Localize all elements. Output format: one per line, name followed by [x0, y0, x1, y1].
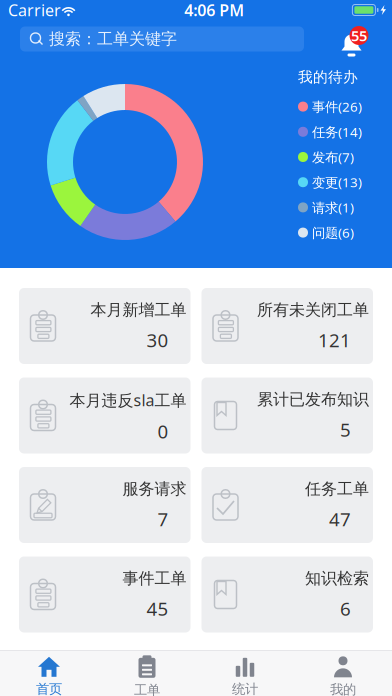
staticText: 累计已发布知识 [257, 389, 369, 409]
button[interactable]: 累计已发布知识 [201, 377, 373, 453]
staticText: 7 [157, 507, 168, 531]
staticText: 首页 [36, 681, 62, 696]
staticText: 本月新增工单 [90, 300, 186, 320]
staticText: 请求(1) [312, 198, 354, 216]
staticText: 5 [340, 417, 351, 442]
staticText: 0 [157, 419, 168, 443]
staticText: 30 [146, 328, 168, 352]
button[interactable]: 工单 [98, 650, 196, 696]
button[interactable]: 搜索：工单关键字 [20, 26, 304, 51]
button[interactable]: 服务请求 [19, 467, 190, 543]
staticText: 事件(26) [312, 98, 362, 115]
button[interactable]: 事件工单 [19, 556, 190, 632]
staticText: 45 [146, 596, 168, 621]
button[interactable]: 本月违反sla工单 [19, 377, 190, 453]
staticText: 55 [351, 26, 367, 45]
staticText: Carrier [8, 0, 61, 21]
staticText: 4:06 PM [184, 0, 244, 21]
staticText: 任务工单 [305, 479, 369, 499]
staticText: 121 [318, 328, 351, 352]
button[interactable]: 所有未关闭工单 [201, 288, 373, 364]
button[interactable]: 知识检索 [201, 556, 373, 632]
staticText: 变更(13) [312, 173, 362, 191]
button[interactable]: 我的 [294, 650, 392, 696]
staticText: 统计 [232, 681, 258, 696]
staticText: 本月违反sla工单 [69, 389, 186, 411]
button[interactable]: Notifications [340, 22, 373, 56]
staticText: 问题(6) [312, 224, 354, 241]
staticText: 事件工单 [122, 568, 186, 588]
button[interactable]: 统计 [196, 650, 294, 696]
staticText: 搜索：工单关键字 [49, 29, 177, 49]
staticText: 任务(14) [312, 123, 362, 141]
button[interactable]: 任务工单 [201, 467, 373, 543]
staticText: 发布(7) [312, 148, 354, 166]
staticText: 服务请求 [122, 479, 186, 499]
staticText: 我的 [330, 681, 356, 696]
button[interactable]: 本月新增工单 [19, 288, 190, 364]
staticText: 47 [329, 507, 351, 531]
staticText: 6 [340, 596, 351, 621]
staticText: 我的待办 [298, 68, 358, 86]
staticText: 所有未关闭工单 [257, 300, 369, 320]
staticText: 工单 [134, 682, 160, 696]
button[interactable]: 首页 [0, 650, 98, 696]
staticText: 知识检索 [305, 568, 369, 588]
